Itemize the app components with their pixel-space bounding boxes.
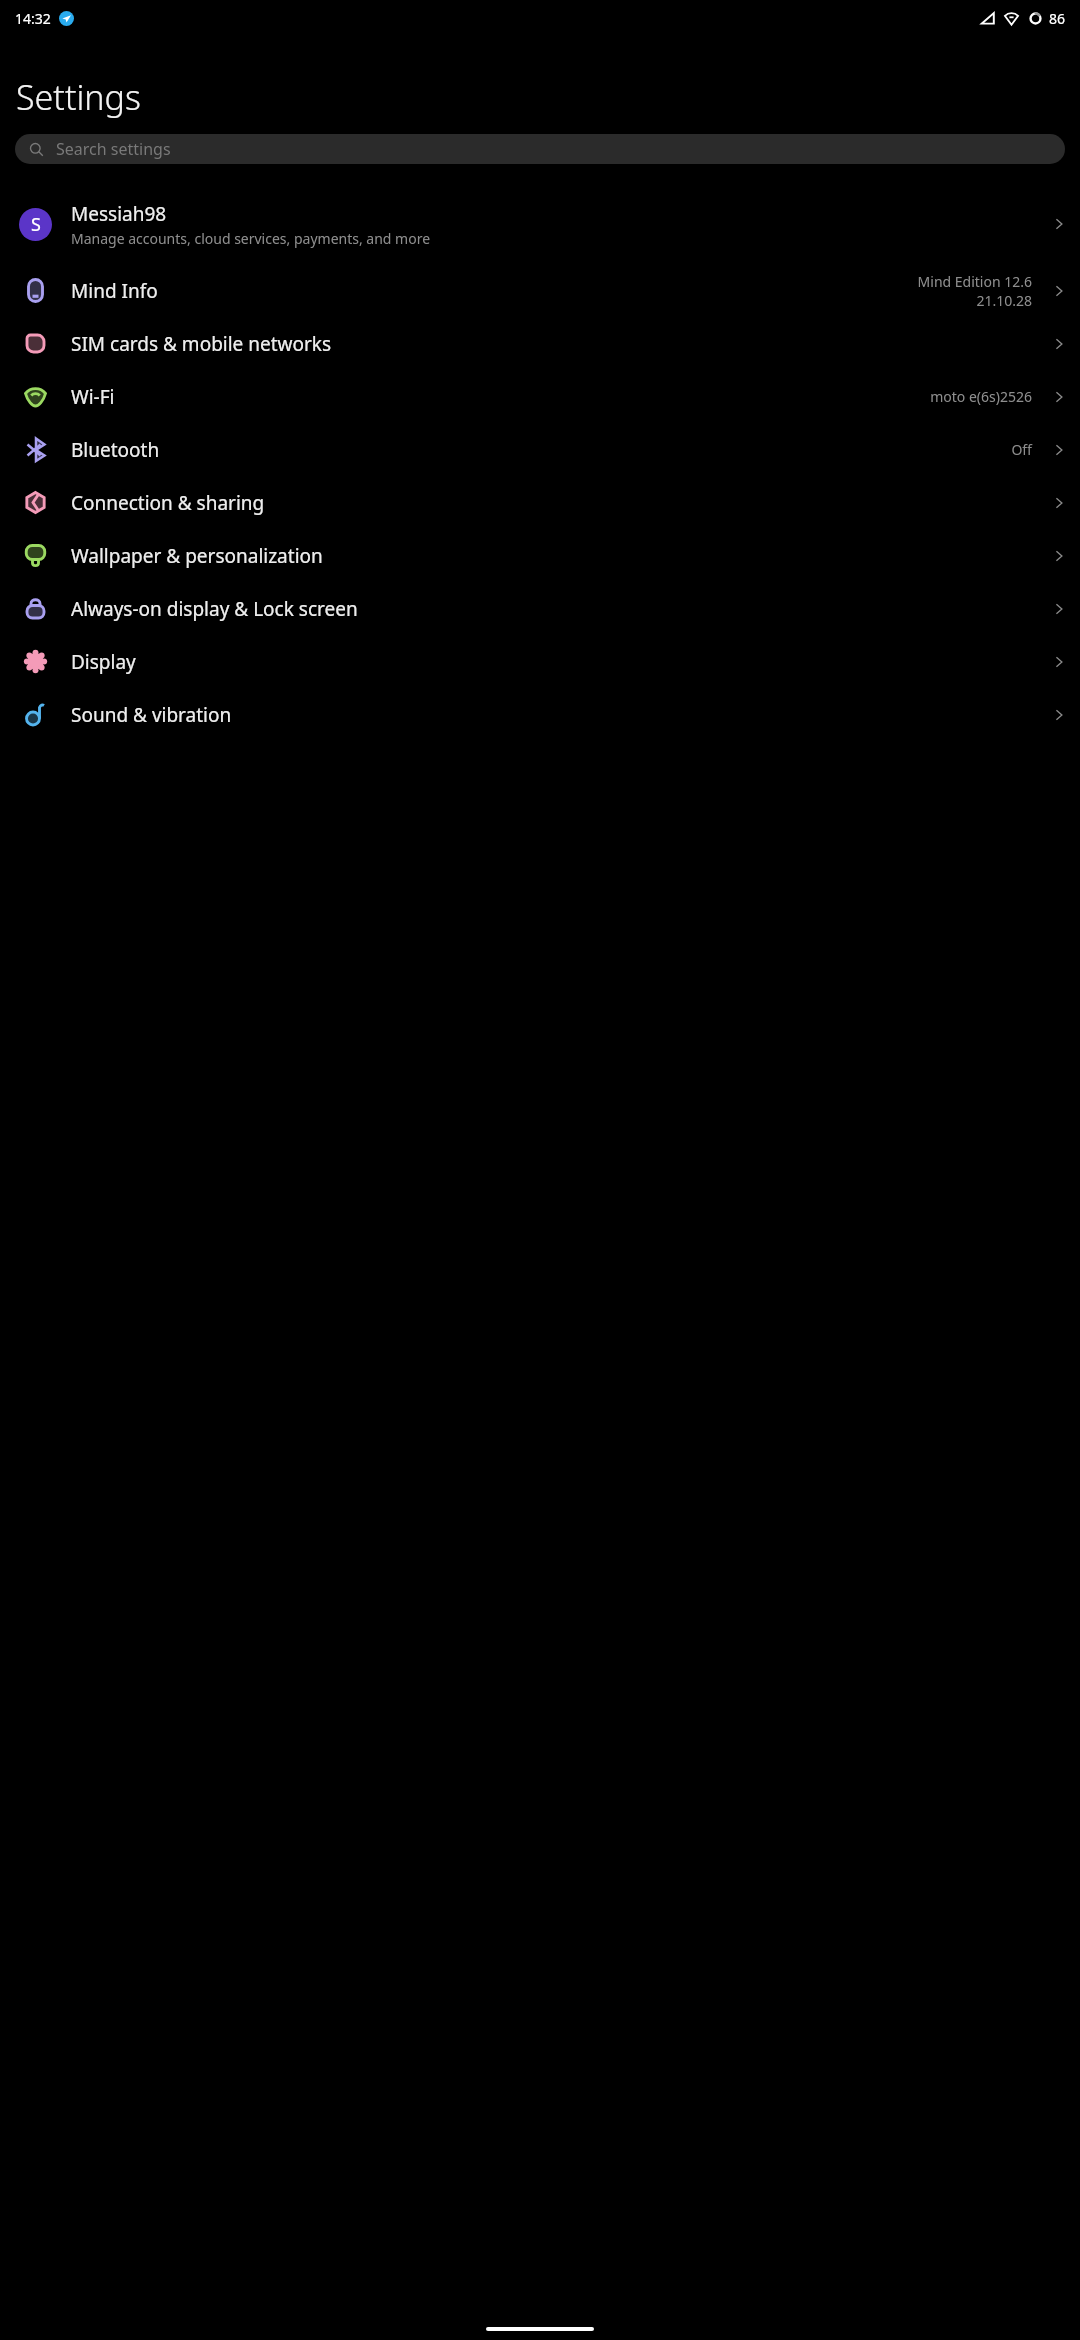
- staticText: 14:32: [15, 9, 51, 28]
- button[interactable]: S: [0, 184, 1080, 264]
- staticText: S: [31, 212, 41, 237]
- staticText: Sound & vibration: [71, 702, 1032, 728]
- staticText: Wi-Fi: [71, 384, 924, 410]
- button[interactable]: Connection & sharing: [0, 476, 1080, 529]
- staticText: 86: [1049, 9, 1066, 28]
- staticText: Wallpaper & personalization: [71, 543, 1032, 569]
- staticText: Mind Edition 12.6 21.10.28: [917, 272, 1032, 310]
- staticText: Off: [1011, 440, 1032, 459]
- staticText: Manage accounts, cloud services, payment…: [71, 229, 431, 248]
- staticText: Display: [71, 649, 1032, 675]
- staticText: Bluetooth: [71, 437, 1005, 463]
- button[interactable]: Search settings: [15, 134, 1065, 164]
- staticText: Connection & sharing: [71, 490, 1032, 516]
- staticText: Messiah98: [71, 201, 167, 227]
- staticText: Settings: [16, 74, 141, 120]
- staticText: Mind Info: [71, 278, 911, 304]
- staticText: moto e(6s)2526: [930, 387, 1032, 406]
- button[interactable]: SIM cards & mobile networks: [0, 317, 1080, 370]
- button[interactable]: Wi-Fi: [0, 370, 1080, 423]
- staticText: Search settings: [56, 138, 171, 160]
- staticText: SIM cards & mobile networks: [71, 331, 1032, 357]
- button[interactable]: Sound & vibration: [0, 688, 1080, 741]
- button[interactable]: Bluetooth: [0, 423, 1080, 476]
- button[interactable]: Display: [0, 635, 1080, 688]
- button[interactable]: Mind Info: [0, 264, 1080, 317]
- button[interactable]: Wallpaper & personalization: [0, 529, 1080, 582]
- button[interactable]: Always-on display & Lock screen: [0, 582, 1080, 635]
- staticText: Always-on display & Lock screen: [71, 596, 1032, 622]
